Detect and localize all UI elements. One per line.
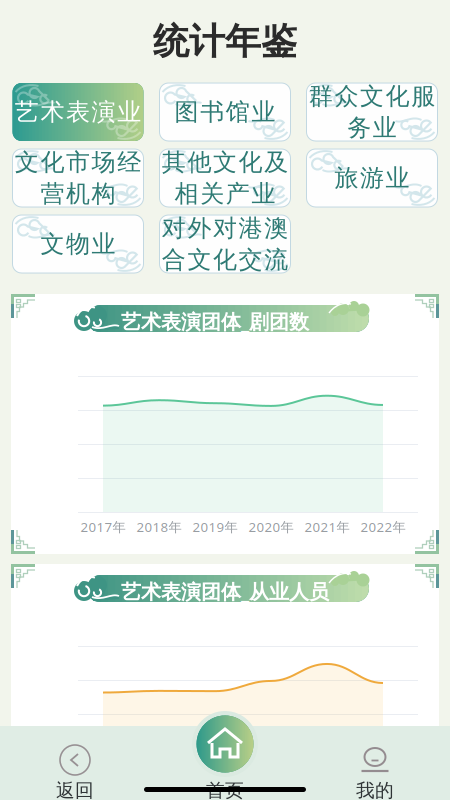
- staticText: 2018年: [136, 788, 181, 800]
- staticText: 首页: [206, 779, 244, 800]
- staticText: 2020年: [248, 788, 293, 800]
- staticText: 2022年: [360, 518, 405, 536]
- button[interactable]: 艺术表演业: [12, 83, 143, 141]
- staticText: 统计年鉴: [153, 19, 297, 64]
- staticText: 2021年: [304, 518, 349, 536]
- staticText: 2019年: [192, 788, 237, 800]
- button[interactable]: 旅游业: [306, 149, 437, 207]
- staticText: 务业: [347, 113, 397, 142]
- staticText: 2022年: [360, 788, 405, 800]
- staticText: 图书馆业: [175, 97, 275, 127]
- staticText: 2017年: [80, 518, 125, 536]
- button[interactable]: 文化市场经: [12, 149, 143, 207]
- staticText: 其他文化及: [162, 147, 288, 177]
- staticText: 群众文化服: [309, 81, 435, 111]
- button[interactable]: 返回: [0, 726, 150, 800]
- button[interactable]: 其他文化及: [159, 149, 290, 207]
- staticText: 对外对港澳: [162, 213, 288, 243]
- button[interactable]: 首页: [192, 711, 258, 777]
- button[interactable]: 对外对港澳: [159, 215, 290, 273]
- staticText: 文物业: [40, 229, 116, 259]
- button[interactable]: 群众文化服: [306, 83, 437, 141]
- staticText: 2017年: [80, 788, 125, 800]
- staticText: 2020年: [248, 518, 293, 536]
- button[interactable]: 文物业: [12, 215, 143, 273]
- staticText: 返回: [56, 779, 94, 800]
- button[interactable]: 我的: [300, 726, 450, 800]
- staticText: 2019年: [192, 518, 237, 536]
- staticText: 2018年: [136, 518, 181, 536]
- staticText: 旅游业: [334, 163, 410, 193]
- staticText: 相关产业: [175, 179, 275, 208]
- staticText: 合文化交流: [162, 245, 288, 274]
- staticText: 文化市场经: [15, 147, 141, 177]
- button[interactable]: 图书馆业: [159, 83, 290, 141]
- button[interactable]: 首页: [150, 726, 300, 800]
- staticText: 我的: [356, 779, 394, 800]
- staticText: 营机构: [40, 179, 116, 208]
- staticText: 艺术表演团体_从业人员: [121, 578, 329, 605]
- staticText: 2021年: [304, 788, 349, 800]
- staticText: 艺术表演业: [15, 97, 141, 127]
- staticText: 艺术表演团体_剧团数: [121, 308, 309, 335]
